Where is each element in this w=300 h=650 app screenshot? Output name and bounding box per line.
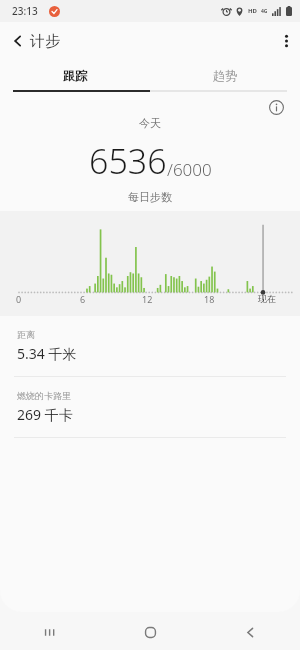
staticText: 今天 [139, 116, 161, 130]
button[interactable]: 趋势 [150, 60, 300, 90]
staticText: 12 [142, 293, 153, 305]
staticText: /6000 [167, 158, 212, 181]
staticText: 每日步数 [128, 190, 172, 204]
button[interactable]: 距离 [0, 316, 300, 376]
staticText: 269 千卡 [17, 405, 73, 424]
staticText: 6 [80, 293, 86, 305]
staticText: 距离 [17, 329, 35, 340]
staticText: 0 [16, 293, 22, 305]
button[interactable]: 跟踪 [0, 60, 150, 90]
staticText: 5.34 千米 [17, 344, 77, 363]
staticText: 现在 [258, 293, 276, 304]
staticText: 计步 [30, 32, 60, 51]
staticText: 23:13 [12, 4, 38, 18]
staticText: 趋势 [213, 68, 237, 83]
staticText: 4G [261, 8, 268, 15]
button[interactable]: 燃烧的卡路里 [0, 377, 300, 437]
button[interactable]: More options [273, 26, 300, 56]
staticText: HD [248, 7, 257, 15]
staticText: 跟踪 [63, 68, 87, 83]
staticText: 6536 [89, 138, 167, 184]
button[interactable]: Back [200, 614, 300, 650]
staticText: 燃烧的卡路里 [17, 390, 71, 401]
button[interactable]: Recent apps [0, 614, 100, 650]
button[interactable]: Home [100, 614, 200, 650]
button[interactable]: Information [265, 96, 288, 119]
staticText: 18 [204, 293, 215, 305]
button[interactable]: Back [0, 27, 30, 55]
